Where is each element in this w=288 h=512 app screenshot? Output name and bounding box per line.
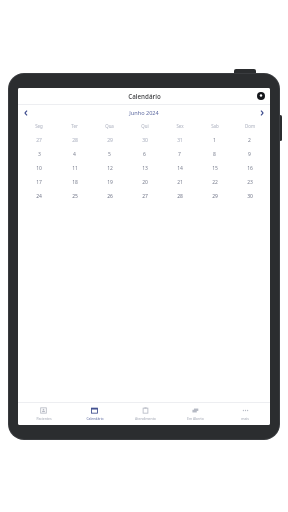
staticText: mais [241, 416, 249, 421]
staticText: 30 [142, 137, 148, 144]
button[interactable]: mais [220, 403, 270, 425]
staticText: 16 [247, 165, 253, 172]
button[interactable]: 20 [127, 175, 162, 189]
staticText: 4 [73, 151, 76, 158]
button[interactable]: 3 [21, 147, 57, 161]
staticText: 17 [36, 179, 42, 186]
staticText: 8 [213, 151, 216, 158]
button[interactable]: 12 [92, 161, 127, 175]
button[interactable]: 30 [127, 133, 162, 147]
staticText: Junho 2024 [129, 109, 159, 117]
staticText: 7 [178, 151, 181, 158]
staticText: 13 [142, 165, 148, 172]
button[interactable]: Mês anterior [20, 107, 32, 119]
staticText: 25 [72, 193, 78, 200]
staticText: Atendimento [135, 416, 156, 421]
button[interactable]: 9 [232, 147, 267, 161]
staticText: 9 [248, 151, 251, 158]
staticText: 14 [177, 165, 183, 172]
button[interactable]: Conta [256, 91, 266, 101]
button[interactable]: 31 [162, 133, 197, 147]
button[interactable]: 28 [162, 189, 197, 203]
staticText: 28 [72, 137, 78, 144]
staticText: 3 [38, 151, 41, 158]
staticText: 10 [36, 165, 42, 172]
staticText: 20 [142, 179, 148, 186]
button[interactable]: 17 [21, 175, 57, 189]
button[interactable]: 22 [197, 175, 232, 189]
button[interactable]: 18 [57, 175, 92, 189]
button[interactable]: 7 [162, 147, 197, 161]
button[interactable]: 30 [232, 189, 267, 203]
button[interactable]: Próximo mês [256, 107, 268, 119]
staticText: 15 [212, 165, 218, 172]
button[interactable]: 4 [57, 147, 92, 161]
staticText: 5 [108, 151, 111, 158]
button[interactable]: 25 [57, 189, 92, 203]
button[interactable]: 6 [127, 147, 162, 161]
staticText: 2 [248, 137, 251, 144]
staticText: Em Aberto [187, 416, 204, 421]
button[interactable]: 11 [57, 161, 92, 175]
staticText: Qui [141, 123, 149, 129]
staticText: 24 [36, 193, 42, 200]
staticText: 11 [72, 165, 78, 172]
button[interactable]: 19 [92, 175, 127, 189]
staticText: 18 [72, 179, 78, 186]
button[interactable]: 26 [92, 189, 127, 203]
button[interactable]: 2 [232, 133, 267, 147]
staticText: 27 [36, 137, 42, 144]
staticText: 28 [177, 193, 183, 200]
button[interactable]: 5 [92, 147, 127, 161]
button[interactable]: 1 [197, 133, 232, 147]
button[interactable]: 13 [127, 161, 162, 175]
staticText: 12 [107, 165, 113, 172]
staticText: Calendário [86, 416, 104, 421]
button[interactable]: Atendimento [120, 403, 170, 425]
button[interactable]: Calendário [69, 403, 120, 425]
staticText: Seg [35, 123, 43, 129]
button[interactable]: 21 [162, 175, 197, 189]
staticText: Qua [105, 123, 114, 129]
button[interactable]: 14 [162, 161, 197, 175]
staticText: Ter [71, 123, 78, 129]
staticText: 23 [247, 179, 253, 186]
staticText: 29 [107, 137, 113, 144]
button[interactable]: 8 [197, 147, 232, 161]
button[interactable]: 15 [197, 161, 232, 175]
staticText: 1 [213, 137, 216, 144]
staticText: Dom [245, 123, 255, 129]
button[interactable]: 28 [57, 133, 92, 147]
button[interactable]: 10 [21, 161, 57, 175]
staticText: Sex [176, 123, 184, 129]
staticText: 6 [143, 151, 146, 158]
button[interactable]: 29 [197, 189, 232, 203]
staticText: 30 [247, 193, 253, 200]
button[interactable]: 24 [21, 189, 57, 203]
staticText: 26 [107, 193, 113, 200]
staticText: Calendário [128, 92, 161, 100]
button[interactable]: Pacientes [18, 403, 69, 425]
staticText: 27 [142, 193, 148, 200]
button[interactable]: 23 [232, 175, 267, 189]
button[interactable]: Em Aberto [170, 403, 220, 425]
staticText: Sab [211, 123, 219, 129]
staticText: 22 [212, 179, 218, 186]
staticText: 31 [177, 137, 183, 144]
staticText: 21 [177, 179, 183, 186]
staticText: Pacientes [36, 416, 52, 421]
staticText: 19 [107, 179, 113, 186]
button[interactable]: 29 [92, 133, 127, 147]
button[interactable]: 16 [232, 161, 267, 175]
button[interactable]: 27 [21, 133, 57, 147]
staticText: 29 [212, 193, 218, 200]
button[interactable]: 27 [127, 189, 162, 203]
